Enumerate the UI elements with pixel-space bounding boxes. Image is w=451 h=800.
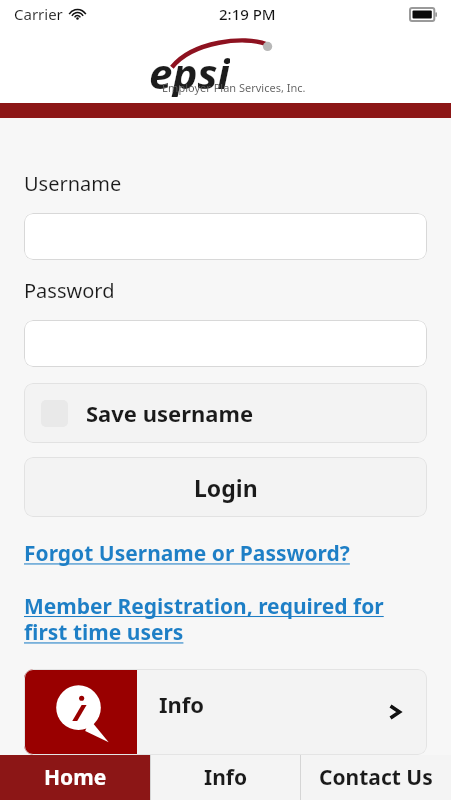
button[interactable]: Member Registration, required for first … (24, 592, 384, 647)
staticText: Save username (86, 398, 254, 428)
staticText: Password (24, 277, 115, 304)
staticText: Forgot Username or Password? (24, 539, 350, 568)
staticText: Username (24, 170, 122, 197)
button[interactable]: Home (0, 755, 150, 800)
button[interactable] (24, 213, 427, 260)
staticText: Info (204, 763, 248, 792)
staticText: Employer Plan Services, Inc. (162, 80, 306, 95)
button[interactable]: Contact Us (301, 755, 451, 800)
button[interactable]: Info (24, 669, 427, 755)
staticText: 2:19 PM (219, 4, 276, 24)
button[interactable]: Save username (24, 383, 427, 443)
staticText: epsi (149, 44, 230, 97)
staticText: Info (159, 689, 205, 719)
button[interactable]: Login (24, 457, 427, 517)
staticText: Contact Us (319, 763, 433, 792)
staticText: Login (194, 472, 258, 503)
button[interactable] (24, 320, 427, 367)
staticText: Carrier (14, 4, 63, 24)
button[interactable]: Forgot Username or Password? (24, 539, 350, 568)
staticText: Member Registration, required for first … (24, 592, 384, 647)
button[interactable]: Info (151, 755, 300, 800)
staticText: Home (44, 763, 107, 792)
